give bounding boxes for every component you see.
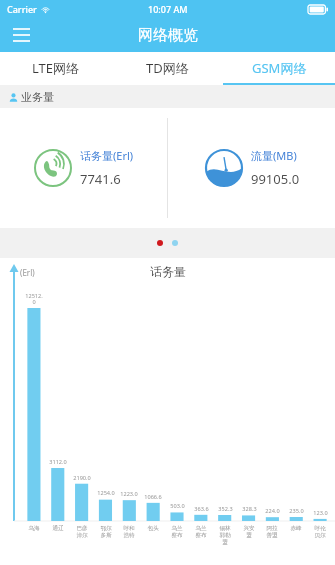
button[interactable]: Page 1 — [157, 240, 163, 246]
staticText: 话务量 — [150, 264, 186, 279]
staticText: (Erl) — [20, 267, 35, 278]
staticText: 话务量(Erl) — [80, 148, 134, 163]
staticText: 2190.0 — [73, 474, 91, 482]
staticText: 99105.0 — [251, 170, 300, 188]
staticText: 乌海 — [28, 525, 40, 532]
staticText: 乌兰 察布 — [195, 525, 207, 539]
staticText: 224.0 — [265, 507, 280, 515]
staticText: 352.3 — [218, 505, 233, 513]
button[interactable]: 流量(MB) — [168, 108, 335, 228]
staticText: 503.0 — [170, 502, 185, 510]
staticText: 1223.0 — [120, 490, 138, 498]
staticText: TD网络 — [146, 59, 189, 77]
staticText: 巴彦 淖尔 — [76, 525, 88, 539]
staticText: 包头 — [147, 525, 159, 532]
staticText: 业务量 — [21, 90, 54, 104]
button[interactable]: GSM网络 — [223, 52, 335, 83]
staticText: LTE网络 — [32, 59, 80, 77]
staticText: 乌兰 察布 — [171, 525, 183, 539]
staticText: 1066.6 — [144, 493, 162, 501]
staticText: 通辽 — [52, 525, 64, 532]
staticText: 12512. 0 — [25, 292, 43, 306]
button[interactable]: Page 2 — [172, 240, 178, 246]
staticText: 10:07 AM — [148, 3, 188, 15]
staticText: 123.0 — [313, 509, 328, 517]
staticText: 363.6 — [194, 505, 209, 513]
staticText: 7741.6 — [80, 170, 121, 188]
button[interactable]: TD网络 — [111, 52, 223, 83]
staticText: 锡林 郭勒 盟 — [219, 525, 231, 546]
staticText: 3112.0 — [49, 458, 67, 466]
staticText: 235.0 — [289, 507, 304, 515]
staticText: 流量(MB) — [251, 148, 297, 163]
staticText: 兴安 盟 — [243, 525, 255, 539]
staticText: 网络概览 — [138, 26, 198, 45]
button[interactable]: LTE网络 — [0, 52, 111, 83]
staticText: GSM网络 — [252, 59, 307, 77]
staticText: 赤峰 — [290, 525, 302, 532]
staticText: 1254.0 — [97, 489, 115, 497]
staticText: Carrier — [7, 3, 37, 15]
button[interactable]: Menu — [6, 20, 36, 50]
staticText: 鄂尔 多斯 — [100, 525, 112, 539]
staticText: 呼和 浩特 — [123, 525, 135, 539]
staticText: 328.3 — [242, 505, 257, 513]
button[interactable]: 话务量(Erl) — [0, 108, 167, 228]
staticText: 阿拉 善盟 — [266, 525, 278, 539]
staticText: 呼伦 贝尔 — [314, 525, 326, 539]
